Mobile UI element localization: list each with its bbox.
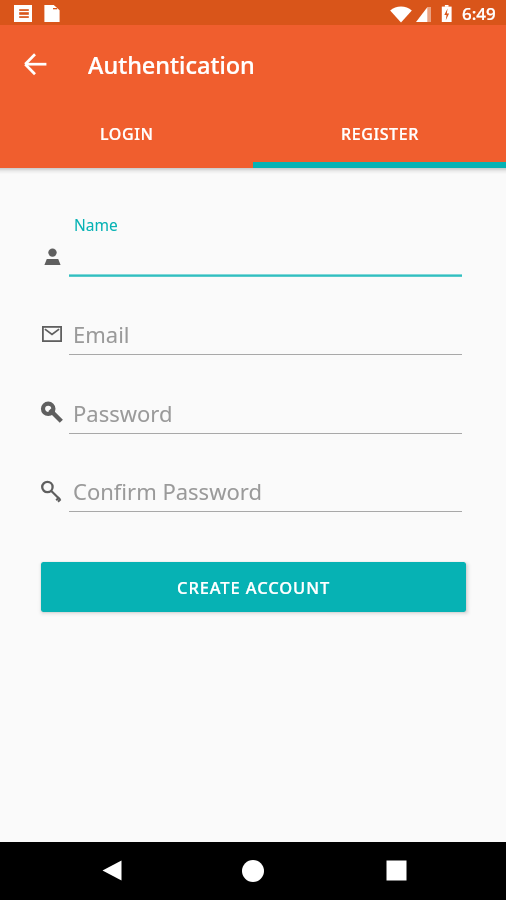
button[interactable]: CREATE ACCOUNT bbox=[41, 562, 466, 612]
button[interactable]: Back bbox=[12, 40, 60, 88]
staticText: LOGIN bbox=[100, 123, 154, 145]
button[interactable]: Home bbox=[232, 850, 274, 892]
staticText: Name bbox=[74, 214, 118, 235]
staticText: Email bbox=[73, 319, 130, 349]
button[interactable]: Email bbox=[0, 277, 506, 356]
staticText: Authentication bbox=[88, 49, 255, 81]
button[interactable]: Password bbox=[0, 356, 506, 435]
staticText: Password bbox=[73, 398, 173, 428]
button[interactable]: LOGIN bbox=[0, 105, 253, 168]
staticText: Confirm Password bbox=[73, 476, 262, 506]
button[interactable]: Recents bbox=[375, 849, 417, 891]
button[interactable]: Confirm Password bbox=[0, 434, 506, 513]
staticText: 6:49 bbox=[462, 2, 496, 25]
button[interactable]: Name bbox=[0, 198, 506, 277]
staticText: REGISTER bbox=[341, 123, 419, 145]
button[interactable]: REGISTER bbox=[253, 105, 506, 168]
staticText: CREATE ACCOUNT bbox=[177, 576, 331, 598]
button[interactable]: Back bbox=[91, 850, 133, 892]
